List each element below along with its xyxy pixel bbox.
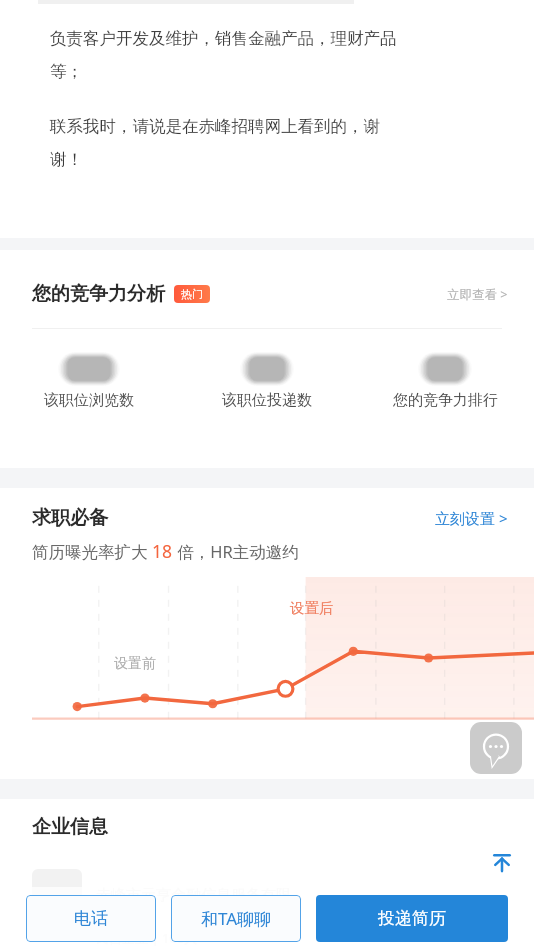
staticText: 热门 <box>181 287 203 301</box>
button[interactable]: 该职位投递数 <box>178 356 356 410</box>
button[interactable]: Back to top <box>478 838 526 886</box>
staticText: 企业信息 <box>32 815 108 839</box>
staticText: 立即查看 > <box>447 286 508 303</box>
staticText: 赤峰市元亨金融信息服务有限... <box>96 884 304 904</box>
staticText: 投递简历 <box>378 908 446 929</box>
staticText: 该职位投递数 <box>222 391 312 410</box>
staticText: 和TA聊聊 <box>201 907 272 930</box>
staticText: 设置前 <box>114 655 156 673</box>
staticText: 设置后 <box>290 599 334 617</box>
staticText: 求职必备 <box>32 506 108 530</box>
button[interactable]: Chat <box>470 722 522 774</box>
button[interactable]: 您的竞争力分析 <box>0 282 534 306</box>
button[interactable]: 电话 <box>26 895 156 942</box>
staticText: 负责客户开发及维护，销售金融产品，理财产品 等； <box>50 28 397 82</box>
button[interactable]: 投递简历 <box>316 895 508 942</box>
button[interactable]: 和TA聊聊 <box>171 895 301 942</box>
staticText: 简历曝光率扩大 <box>32 540 152 563</box>
button[interactable]: 您的竞争力排行 <box>356 356 534 410</box>
staticText: 电话 <box>74 908 108 929</box>
staticText: 民营企业 | 100人 <box>96 929 198 947</box>
staticText: 您的竞争力分析 <box>32 282 165 306</box>
staticText: 18 <box>152 539 173 563</box>
staticText: 该职位浏览数 <box>44 391 134 410</box>
staticText: 您的竞争力排行 <box>393 391 498 410</box>
button[interactable]: 该职位浏览数 <box>0 356 178 410</box>
staticText: 倍，HR主动邀约 <box>173 540 299 563</box>
staticText: 联系我时，请说是在赤峰招聘网上看到的，谢 谢！ <box>50 116 380 170</box>
staticText: 立刻设置 > <box>435 508 508 528</box>
button[interactable]: 求职必备 <box>0 506 534 530</box>
